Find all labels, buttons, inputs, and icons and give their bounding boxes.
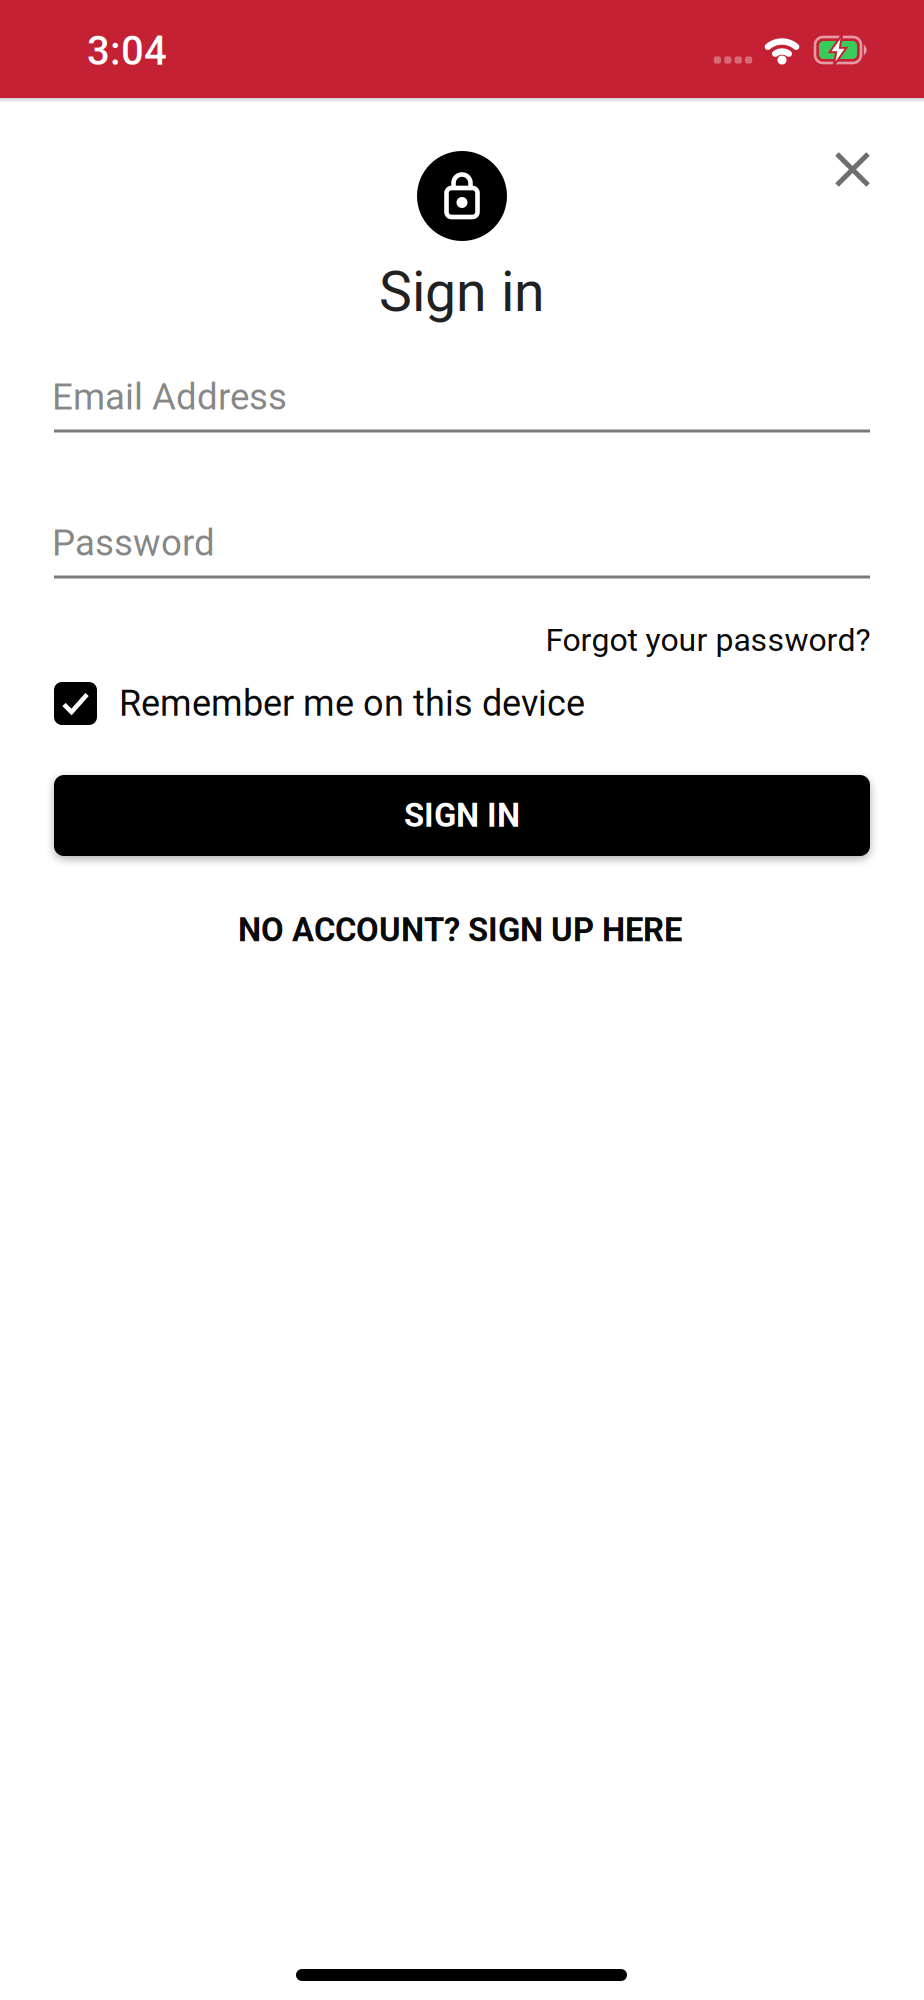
staticText: Remember me on this device (119, 682, 585, 725)
staticText: Email Address (52, 375, 287, 418)
staticText: Password (52, 521, 215, 564)
button[interactable]: Close (834, 151, 870, 187)
button[interactable]: Forgot your password? (545, 621, 870, 659)
button[interactable]: Remember me on this device (54, 682, 870, 725)
button[interactable]: SIGN IN (54, 775, 870, 856)
staticText: Forgot your password? (545, 621, 870, 659)
staticText: Sign in (379, 260, 545, 324)
staticText: 3:04 (87, 28, 167, 74)
button[interactable]: Email Address (54, 355, 870, 447)
button[interactable]: NO ACCOUNT? SIGN UP HERE (238, 911, 682, 949)
staticText: SIGN IN (404, 796, 520, 835)
staticText: NO ACCOUNT? SIGN UP HERE (238, 911, 682, 949)
button[interactable]: Password (54, 501, 870, 593)
